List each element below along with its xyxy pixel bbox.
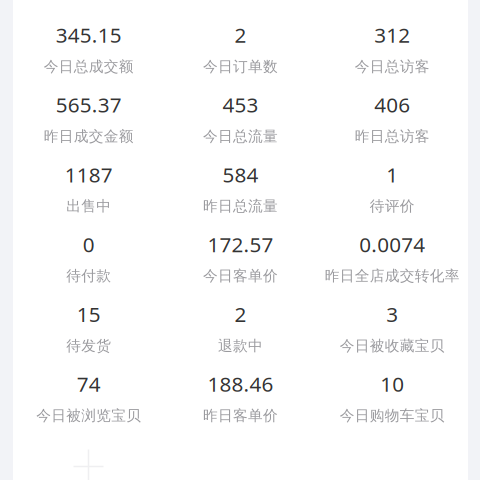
staticText: 453 — [222, 90, 258, 119]
staticText: 昨日总访客 — [355, 127, 430, 146]
staticText: 退款中 — [218, 336, 263, 355]
staticText: 0 — [83, 230, 95, 258]
staticText: 出售中 — [66, 197, 111, 215]
button[interactable]: 188.46 — [165, 370, 316, 439]
staticText: 565.37 — [56, 90, 122, 119]
staticText: 昨日全店成交转化率 — [325, 267, 460, 285]
staticText: 待发货 — [66, 336, 111, 355]
staticText: 待付款 — [66, 267, 111, 285]
button[interactable]: 453 — [165, 90, 316, 160]
staticText: 0.0074 — [359, 230, 425, 258]
button[interactable]: 1187 — [13, 160, 165, 230]
button[interactable]: 565.37 — [13, 90, 165, 160]
staticText: 昨日总流量 — [203, 197, 278, 215]
button[interactable]: 312 — [316, 21, 468, 90]
button[interactable]: 10 — [316, 370, 468, 439]
staticText: 1187 — [65, 160, 113, 188]
button[interactable]: 2 — [165, 21, 316, 90]
button[interactable]: 0 — [13, 230, 165, 300]
staticText: 今日总流量 — [203, 127, 278, 146]
staticText: 345.15 — [56, 21, 122, 49]
staticText: 312 — [374, 21, 410, 49]
button[interactable]: 1 — [316, 160, 468, 230]
button[interactable]: 0.0074 — [316, 230, 468, 300]
button[interactable]: 74 — [13, 370, 165, 439]
button[interactable]: 15 — [13, 300, 165, 370]
staticText: 待评价 — [370, 197, 415, 215]
staticText: 今日总访客 — [355, 57, 430, 76]
staticText: 2 — [234, 300, 246, 328]
button[interactable]: 添加模块 — [71, 449, 105, 480]
staticText: 今日总成交额 — [44, 57, 134, 76]
staticText: 昨日成交金额 — [44, 127, 134, 146]
button[interactable]: 172.57 — [165, 230, 316, 300]
staticText: 584 — [222, 160, 258, 188]
staticText: 3 — [386, 300, 398, 328]
button[interactable]: 406 — [316, 90, 468, 160]
staticText: 今日购物车宝贝 — [340, 406, 445, 425]
staticText: 172.57 — [207, 230, 273, 258]
staticText: 15 — [77, 300, 101, 328]
staticText: 10 — [380, 370, 404, 398]
staticText: 406 — [374, 90, 410, 119]
staticText: 1 — [386, 160, 398, 188]
button[interactable]: 345.15 — [13, 21, 165, 90]
staticText: 今日被收藏宝贝 — [340, 336, 445, 355]
button[interactable]: 2 — [165, 300, 316, 370]
staticText: 74 — [77, 370, 101, 398]
staticText: 昨日客单价 — [203, 406, 278, 425]
staticText: 188.46 — [207, 370, 273, 398]
staticText: 今日被浏览宝贝 — [36, 406, 141, 425]
button[interactable]: 584 — [165, 160, 316, 230]
staticText: 今日客单价 — [203, 267, 278, 285]
button[interactable]: 3 — [316, 300, 468, 370]
staticText: 今日订单数 — [203, 57, 278, 76]
staticText: 2 — [234, 21, 246, 49]
